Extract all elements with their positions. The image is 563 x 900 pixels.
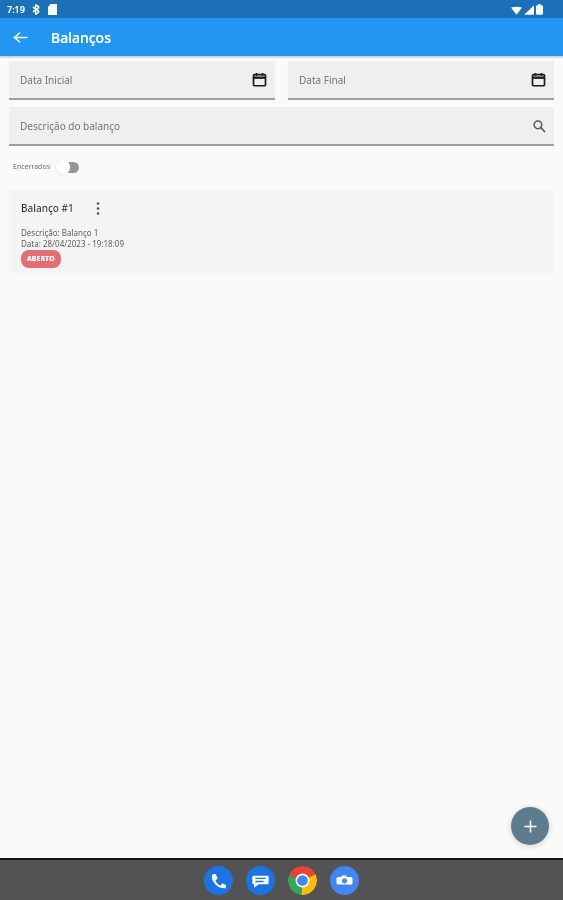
button[interactable]: Balanço #1: [9, 190, 554, 273]
button[interactable]: Toggle encerrados: [55, 158, 81, 176]
button[interactable]: Data Final: [288, 61, 554, 100]
staticText: Data: 28/04/2023 - 19:18:09: [21, 238, 124, 249]
button[interactable]: Messages: [246, 866, 275, 895]
staticText: Encerrados: [13, 162, 50, 172]
button[interactable]: Chrome: [288, 866, 317, 895]
button[interactable]: Back: [7, 24, 33, 50]
staticText: ABERTO: [27, 254, 55, 264]
button[interactable]: Add balance: [511, 807, 549, 845]
staticText: Balanços: [51, 28, 111, 47]
staticText: Descrição: Balanço 1: [21, 227, 99, 238]
staticText: Balanço #1: [21, 201, 74, 215]
staticText: 7:19: [7, 3, 25, 15]
button[interactable]: Phone: [204, 866, 233, 895]
staticText: Descrição do balanço: [20, 119, 121, 133]
button[interactable]: More options: [91, 200, 105, 216]
button[interactable]: Data Inicial: [9, 61, 275, 100]
staticText: Data Final: [299, 73, 346, 87]
staticText: Data Inicial: [20, 73, 73, 87]
button[interactable]: Camera: [330, 866, 359, 895]
button[interactable]: Descrição do balanço: [9, 107, 554, 146]
